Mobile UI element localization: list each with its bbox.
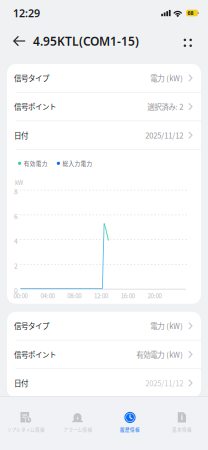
staticText: 選択済み: 2 bbox=[147, 101, 183, 112]
staticText: 68 bbox=[188, 9, 194, 17]
staticText: 信号ポイント bbox=[14, 349, 56, 360]
staticText: 08:00 bbox=[67, 291, 81, 300]
button[interactable]: 信号ポイント bbox=[7, 340, 201, 368]
staticText: 0 bbox=[14, 285, 18, 295]
staticText: 2025/11/12 bbox=[145, 130, 183, 141]
button[interactable]: More options bbox=[179, 31, 197, 51]
staticText: 2 bbox=[14, 261, 18, 270]
staticText: 信号タイプ bbox=[14, 73, 49, 83]
staticText: 基本情報 bbox=[172, 426, 192, 433]
staticText: 12:29 bbox=[13, 6, 40, 20]
staticText: 20:00 bbox=[148, 291, 162, 300]
staticText: 電力 (kW) bbox=[150, 73, 183, 83]
staticText: 00:00 bbox=[14, 291, 28, 300]
button[interactable]: 履歴情報 bbox=[104, 396, 156, 440]
button[interactable]: 信号タイプ bbox=[7, 312, 201, 340]
staticText: リアルタイム情報 bbox=[7, 426, 45, 433]
staticText: 12:00 bbox=[94, 291, 108, 300]
button[interactable]: アラーム情報 bbox=[52, 396, 104, 440]
staticText: 日付 bbox=[14, 378, 28, 388]
staticText: 2025/11/12 bbox=[145, 378, 183, 388]
button[interactable]: 信号ポイント bbox=[7, 93, 201, 121]
staticText: 履歴情報 bbox=[120, 426, 140, 433]
button[interactable]: 基本情報 bbox=[156, 396, 208, 440]
staticText: 16:00 bbox=[121, 291, 135, 300]
button[interactable]: 信号タイプ bbox=[7, 64, 201, 92]
staticText: 電力 (kW) bbox=[150, 320, 183, 331]
staticText: 信号ポイント bbox=[14, 101, 56, 112]
staticText: kW bbox=[15, 178, 23, 187]
staticText: 日付 bbox=[14, 130, 28, 141]
staticText: 6 bbox=[14, 211, 18, 221]
staticText: 4.95KTL(COM1-15) bbox=[33, 33, 139, 49]
staticText: 4 bbox=[14, 236, 18, 246]
staticText: アラーム情報 bbox=[63, 426, 92, 433]
button[interactable]: 日付 bbox=[7, 369, 201, 397]
button[interactable]: Back bbox=[9, 30, 30, 51]
staticText: 8 bbox=[14, 186, 18, 196]
button[interactable]: 日付 bbox=[7, 121, 201, 149]
button[interactable]: リアルタイム情報 bbox=[0, 396, 52, 440]
staticText: 有効電力 (kW) bbox=[136, 349, 183, 360]
staticText: 信号タイプ bbox=[14, 320, 49, 331]
staticText: 有効電力 bbox=[24, 159, 48, 167]
staticText: 04:00 bbox=[40, 291, 54, 300]
staticText: 総入力電力 bbox=[63, 159, 93, 167]
